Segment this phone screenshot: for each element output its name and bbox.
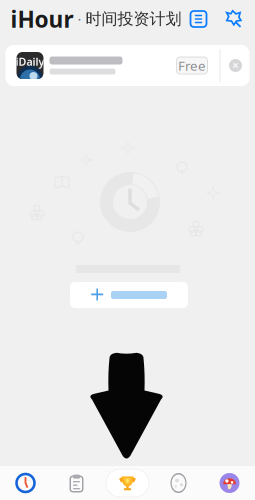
button[interactable]: iDaily (0, 38, 255, 86)
button[interactable]: Profile (204, 466, 255, 500)
staticText: · (73, 9, 85, 29)
button[interactable]: Timer (0, 466, 51, 500)
button[interactable]: Achievements (102, 466, 153, 500)
button[interactable]: Eggs (153, 466, 204, 500)
button[interactable]: Projects list (189, 10, 207, 28)
staticText: iDaily (15, 54, 44, 69)
button[interactable] (70, 282, 188, 308)
button[interactable]: Magic (223, 9, 242, 28)
staticText: 时间投资计划 (85, 9, 181, 29)
staticText: iHour (10, 4, 73, 34)
staticText: Free (178, 57, 206, 74)
button[interactable]: Records (51, 466, 102, 500)
